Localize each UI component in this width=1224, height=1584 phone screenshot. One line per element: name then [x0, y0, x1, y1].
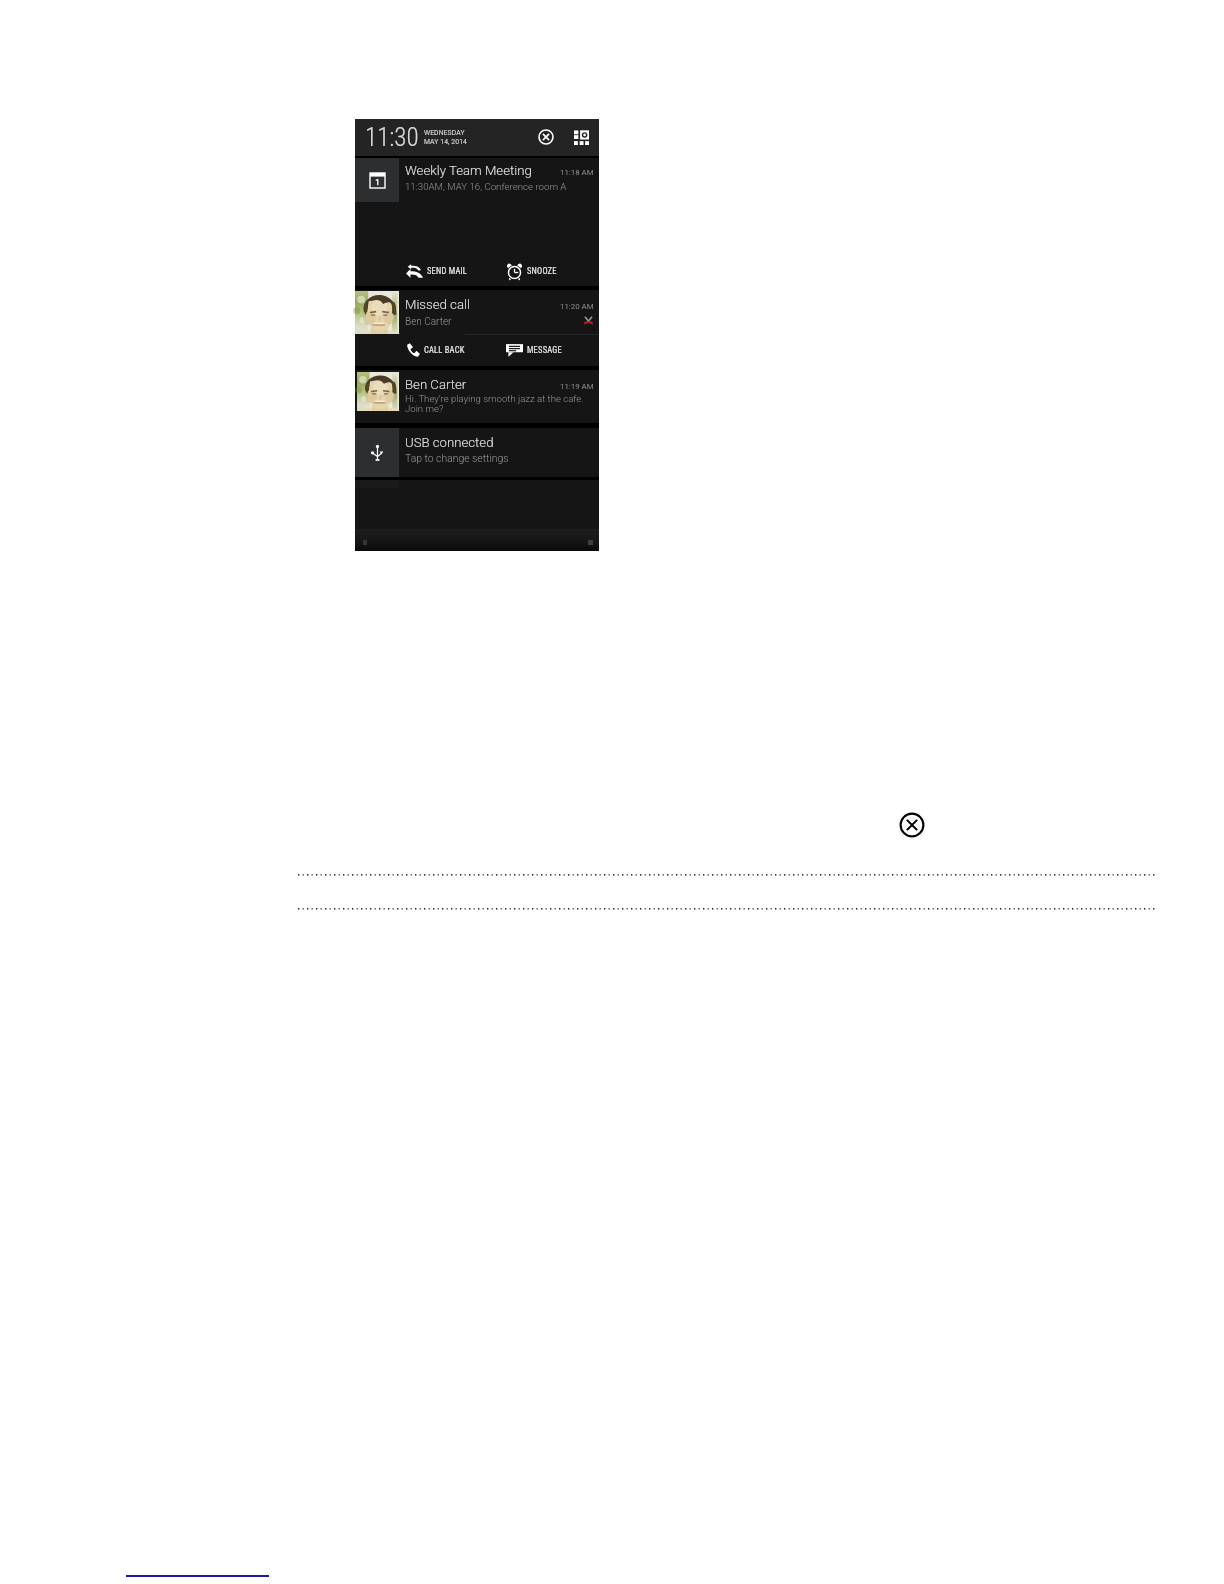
button[interactable]: SEND MAIL — [406, 260, 468, 282]
button[interactable]: Quick settings — [571, 127, 591, 147]
staticText: MESSAGE — [527, 345, 562, 355]
button[interactable]: Clear all notifications — [536, 127, 556, 147]
staticText: 11:30AM, MAY 16, Conference room A — [405, 181, 567, 192]
staticText: Missed call — [405, 297, 470, 312]
staticText: 11:18 AM — [560, 168, 594, 177]
staticText: Ben Carter — [405, 316, 452, 328]
staticText: 11:20 AM — [560, 302, 594, 311]
staticText: MAY 14, 2014 — [424, 138, 468, 146]
staticText: Ben Carter — [405, 377, 467, 392]
button[interactable]: SNOOZE — [506, 260, 557, 282]
staticText: 11:19 AM — [560, 382, 594, 391]
button[interactable]: USB connected — [355, 428, 599, 477]
button[interactable]: Weekly Team Meeting — [355, 158, 599, 286]
staticText: Hi. They're playing smooth jazz at the c… — [405, 393, 584, 414]
staticText: 11:30 — [365, 123, 419, 152]
staticText: CALL BACK — [424, 345, 465, 355]
button[interactable]: Missed call — [355, 290, 599, 366]
button[interactable]: Ben Carter — [355, 370, 599, 423]
button[interactable]: MESSAGE — [506, 339, 562, 361]
staticText: Tap to change settings — [405, 452, 509, 464]
staticText: SNOOZE — [527, 266, 557, 276]
button[interactable]: Clear all notifications — [899, 812, 925, 838]
button[interactable]: CALL BACK — [406, 339, 465, 361]
staticText: USB connected — [405, 435, 494, 450]
staticText: Weekly Team Meeting — [405, 163, 532, 178]
staticText: WEDNESDAY — [424, 129, 465, 137]
staticText: SEND MAIL — [427, 266, 468, 276]
